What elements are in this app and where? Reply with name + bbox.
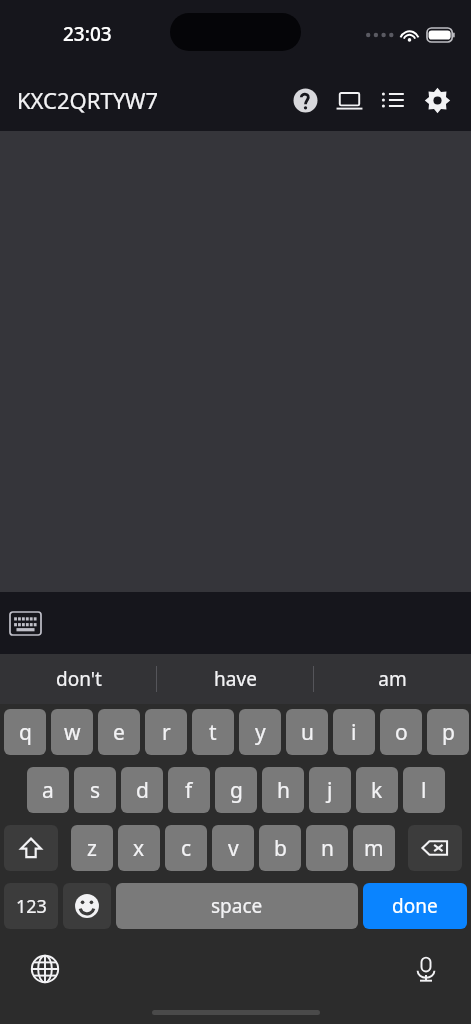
- button[interactable]: am: [314, 654, 471, 704]
- button[interactable]: s: [74, 767, 116, 813]
- button[interactable]: a: [27, 767, 69, 813]
- button[interactable]: k: [356, 767, 398, 813]
- button[interactable]: Hide keyboard: [3, 601, 47, 645]
- staticText: 123: [16, 894, 47, 919]
- staticText: d: [136, 776, 149, 805]
- staticText: t: [209, 718, 217, 747]
- button[interactable]: Settings: [415, 78, 459, 122]
- button[interactable]: Backspace: [408, 825, 462, 871]
- button[interactable]: o: [380, 709, 422, 755]
- staticText: u: [301, 718, 314, 747]
- staticText: g: [230, 776, 243, 805]
- button[interactable]: Emoji: [63, 883, 111, 929]
- button[interactable]: y: [239, 709, 281, 755]
- staticText: i: [351, 718, 357, 747]
- staticText: f: [185, 776, 193, 805]
- button[interactable]: don't: [0, 654, 157, 704]
- staticText: a: [42, 776, 54, 805]
- button[interactable]: d: [121, 767, 163, 813]
- button[interactable]: space: [116, 883, 358, 929]
- staticText: j: [327, 776, 333, 805]
- staticText: KXC2QRTYW7: [17, 85, 159, 115]
- staticText: have: [214, 666, 257, 692]
- staticText: c: [181, 834, 192, 863]
- staticText: q: [19, 718, 32, 747]
- button[interactable]: 123: [4, 883, 58, 929]
- button[interactable]: q: [4, 709, 46, 755]
- button[interactable]: Change keyboard language: [23, 947, 67, 991]
- staticText: n: [321, 834, 334, 863]
- button[interactable]: done: [363, 883, 467, 929]
- button[interactable]: t: [192, 709, 234, 755]
- button[interactable]: e: [98, 709, 140, 755]
- button[interactable]: Help: [283, 78, 327, 122]
- button[interactable]: v: [212, 825, 254, 871]
- staticText: z: [87, 834, 97, 863]
- staticText: v: [228, 834, 239, 863]
- button[interactable]: u: [286, 709, 328, 755]
- button[interactable]: n: [306, 825, 348, 871]
- staticText: am: [378, 666, 407, 692]
- button[interactable]: have: [157, 654, 314, 704]
- button[interactable]: Shift: [4, 825, 58, 871]
- staticText: done: [392, 893, 438, 919]
- button[interactable]: i: [333, 709, 375, 755]
- staticText: x: [133, 834, 145, 863]
- button[interactable]: h: [262, 767, 304, 813]
- staticText: space: [211, 893, 263, 919]
- staticText: h: [277, 776, 290, 805]
- button[interactable]: b: [259, 825, 301, 871]
- button[interactable]: f: [168, 767, 210, 813]
- staticText: don't: [56, 666, 102, 692]
- button[interactable]: z: [71, 825, 113, 871]
- button[interactable]: l: [403, 767, 445, 813]
- staticText: m: [364, 834, 384, 863]
- button[interactable]: m: [353, 825, 395, 871]
- button[interactable]: c: [165, 825, 207, 871]
- button[interactable]: Desktop view: [327, 78, 371, 122]
- staticText: r: [162, 718, 171, 747]
- staticText: w: [64, 718, 81, 747]
- staticText: p: [442, 718, 455, 747]
- staticText: b: [274, 834, 287, 863]
- staticText: l: [421, 776, 427, 805]
- button[interactable]: p: [427, 709, 469, 755]
- staticText: k: [371, 776, 383, 805]
- staticText: o: [395, 718, 408, 747]
- staticText: e: [113, 718, 125, 747]
- button[interactable]: List: [371, 78, 415, 122]
- staticText: y: [255, 718, 266, 747]
- button[interactable]: Voice input: [404, 947, 448, 991]
- button[interactable]: g: [215, 767, 257, 813]
- staticText: s: [90, 776, 101, 805]
- button[interactable]: r: [145, 709, 187, 755]
- button[interactable]: w: [51, 709, 93, 755]
- button[interactable]: j: [309, 767, 351, 813]
- staticText: 23:03: [63, 21, 112, 47]
- button[interactable]: x: [118, 825, 160, 871]
